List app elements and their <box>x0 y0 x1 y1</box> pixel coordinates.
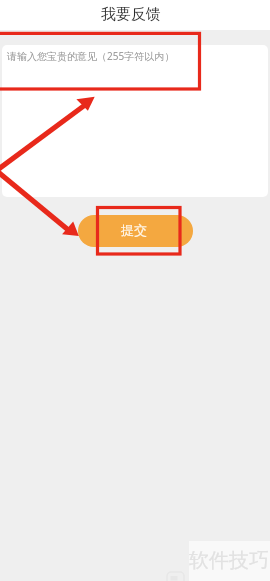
button[interactable]: 提交 <box>78 215 193 247</box>
staticText: 请输入您宝贵的意见（255字符以内） <box>7 49 175 63</box>
staticText: 提交 <box>121 222 147 238</box>
staticText: 软件技巧 <box>189 548 269 573</box>
button[interactable]: 请输入您宝贵的意见（255字符以内） <box>2 45 268 197</box>
staticText: 我要反馈 <box>101 5 161 24</box>
